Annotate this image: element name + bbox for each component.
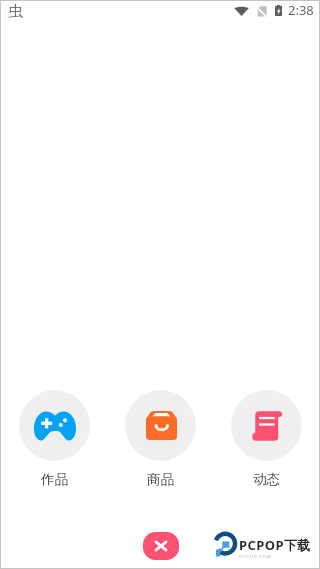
button[interactable]: 商品 bbox=[107, 390, 213, 488]
staticText: 作品 bbox=[41, 471, 68, 488]
staticText: PCPOP下载 bbox=[239, 536, 311, 554]
staticText: 动态 bbox=[253, 471, 280, 488]
button[interactable]: 动态 bbox=[213, 390, 319, 488]
button[interactable]: Close bbox=[143, 532, 179, 560]
staticText: 商品 bbox=[147, 471, 174, 488]
staticText: PCPOP.COM bbox=[239, 554, 272, 560]
staticText: 2:38 bbox=[288, 1, 314, 19]
staticText: 虫 bbox=[8, 2, 23, 21]
button[interactable]: 作品 bbox=[1, 390, 107, 488]
